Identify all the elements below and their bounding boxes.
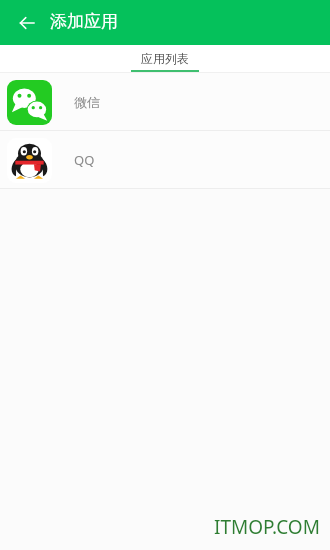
button[interactable]: QQ [0, 131, 330, 188]
staticText: QQ [74, 151, 95, 169]
button[interactable]: 微信 [0, 73, 330, 130]
button[interactable]: Back [8, 4, 46, 42]
staticText: ITMOP.COM [214, 514, 320, 540]
staticText: 添加应用 [50, 11, 118, 32]
staticText: 应用列表 [141, 51, 189, 66]
staticText: 微信 [74, 94, 100, 110]
button[interactable]: 应用列表 [131, 46, 199, 72]
